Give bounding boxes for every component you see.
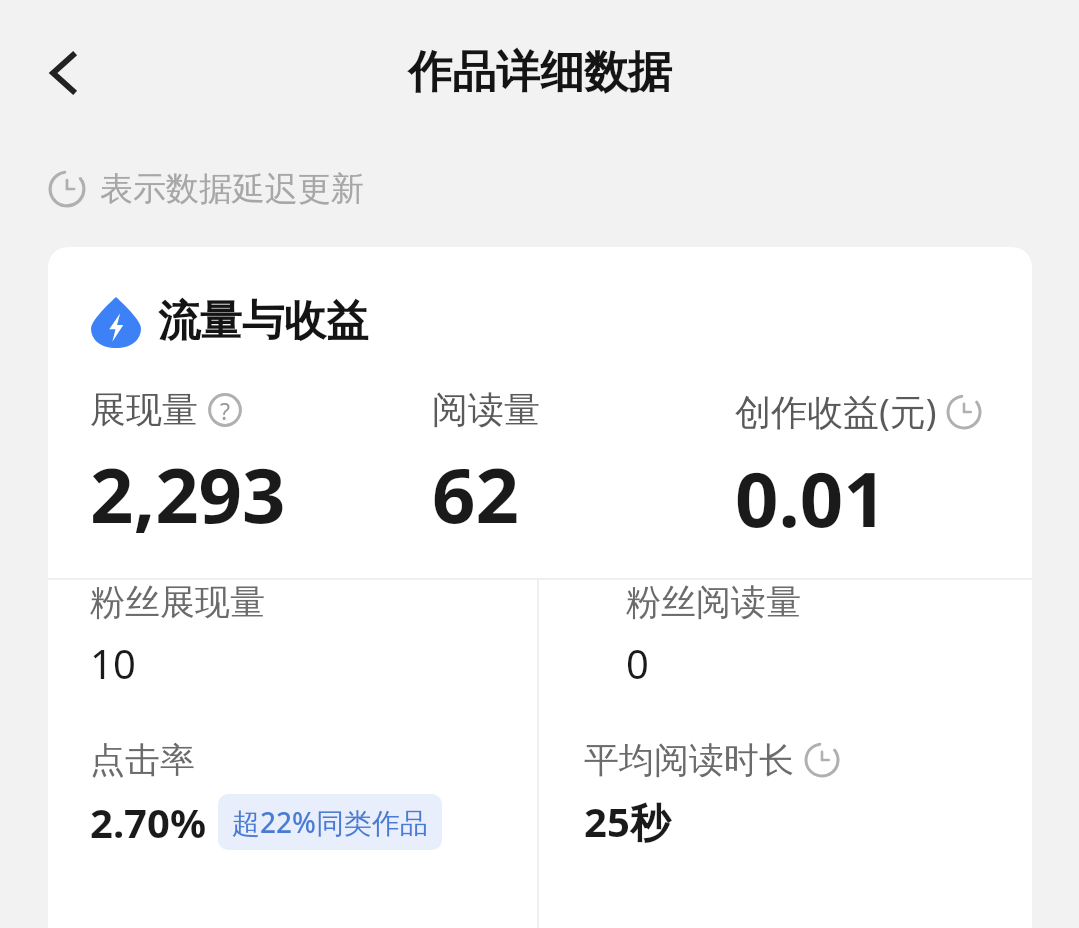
staticText: 展现量 (90, 387, 198, 432)
button[interactable]: 点击率 (90, 738, 537, 850)
staticText: 25秒 (584, 794, 670, 849)
staticText: 表示数据延迟更新 (100, 168, 364, 210)
button[interactable]: 粉丝阅读量 (626, 580, 1032, 690)
staticText: 62 (432, 442, 519, 546)
button[interactable]: 帮助 (207, 392, 243, 428)
staticText: 创作收益(元) (735, 387, 937, 436)
staticText: 0 (626, 636, 649, 690)
staticText: 2.70% (90, 795, 206, 849)
staticText: ? (220, 395, 230, 426)
staticText: 10 (90, 636, 136, 690)
button[interactable]: 流量与收益 (90, 295, 368, 348)
button[interactable]: 粉丝展现量 (90, 580, 537, 690)
staticText: 粉丝展现量 (90, 580, 265, 624)
staticText: 平均阅读时长 (584, 738, 794, 782)
staticText: 流量与收益 (158, 295, 368, 348)
staticText: 0.01 (735, 446, 887, 550)
staticText: 点击率 (90, 738, 195, 782)
button[interactable]: Back (20, 30, 106, 116)
button[interactable]: 平均阅读时长 (584, 738, 1032, 849)
staticText: 粉丝阅读量 (626, 580, 801, 624)
staticText: 阅读量 (432, 387, 540, 432)
staticText: 2,293 (90, 442, 286, 546)
staticText: 超22%同类作品 (232, 803, 428, 841)
staticText: 作品详细数据 (408, 45, 672, 100)
